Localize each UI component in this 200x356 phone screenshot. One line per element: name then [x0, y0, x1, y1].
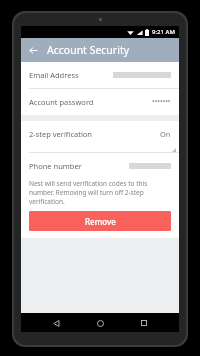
button[interactable]: Account password — [21, 89, 179, 115]
staticText: ••••••• — [152, 97, 171, 107]
staticText: Email Address — [29, 70, 79, 80]
staticText: Account password — [29, 97, 94, 107]
button[interactable]: Email Address — [21, 62, 179, 88]
staticText: Account Security — [47, 43, 130, 57]
button[interactable]: Phone number — [21, 153, 179, 179]
button[interactable]: Recent apps — [135, 314, 153, 332]
button[interactable]: Back — [25, 42, 41, 58]
staticText: Remove — [85, 216, 116, 227]
button[interactable]: Back — [47, 314, 65, 332]
button[interactable]: 2-step verification — [21, 121, 179, 147]
button[interactable]: Remove — [29, 211, 171, 231]
staticText: On — [160, 129, 171, 139]
staticText: Phone number — [29, 161, 82, 171]
staticText: 2-step verification — [29, 129, 93, 139]
staticText: Nest will send verification codes to thi… — [29, 179, 171, 206]
staticText: 9:21 AM — [152, 28, 175, 36]
button[interactable]: Home — [91, 314, 109, 332]
